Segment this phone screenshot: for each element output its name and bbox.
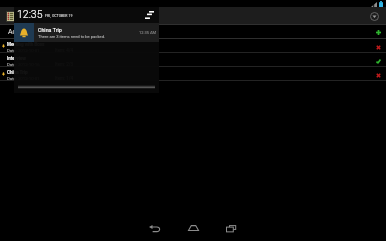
button[interactable]: Back bbox=[140, 215, 168, 241]
button[interactable]: Delete bbox=[372, 69, 384, 81]
staticText: China Trip bbox=[38, 27, 62, 33]
staticText: China Trip bbox=[7, 70, 28, 75]
staticText: Active Lists bbox=[8, 28, 45, 36]
button[interactable]: China Trip bbox=[0, 67, 386, 81]
button[interactable]: More options bbox=[368, 10, 381, 23]
button[interactable]: Complete bbox=[372, 55, 384, 67]
staticText: Date: 2012-10-16 bbox=[7, 62, 40, 67]
staticText: There are 3 items need to be packed. bbox=[38, 34, 106, 39]
staticText: FRI, OCTOBER 19 bbox=[45, 14, 73, 18]
staticText: Meeting with Boss bbox=[7, 42, 45, 47]
button[interactable]: China Trip bbox=[14, 23, 159, 42]
button[interactable]: Active Lists bbox=[0, 25, 386, 39]
staticText: 12:35 AM bbox=[139, 30, 157, 35]
button[interactable]: Quick settings bbox=[143, 8, 156, 21]
staticText: Date: 2012-10-01 bbox=[7, 76, 40, 81]
button[interactable]: Recent apps bbox=[217, 215, 245, 241]
button[interactable]: Add list bbox=[372, 26, 384, 38]
button[interactable]: Interview bbox=[0, 53, 386, 67]
button[interactable]: Delete bbox=[372, 41, 384, 53]
staticText: 12:35 bbox=[17, 8, 43, 20]
button[interactable]: Meeting with Boss bbox=[0, 39, 386, 53]
staticText: Interview bbox=[7, 56, 26, 61]
staticText: Date: 2012-10-01 bbox=[7, 48, 40, 53]
button[interactable]: App logo bbox=[6, 11, 15, 22]
button[interactable]: Home bbox=[179, 215, 207, 241]
